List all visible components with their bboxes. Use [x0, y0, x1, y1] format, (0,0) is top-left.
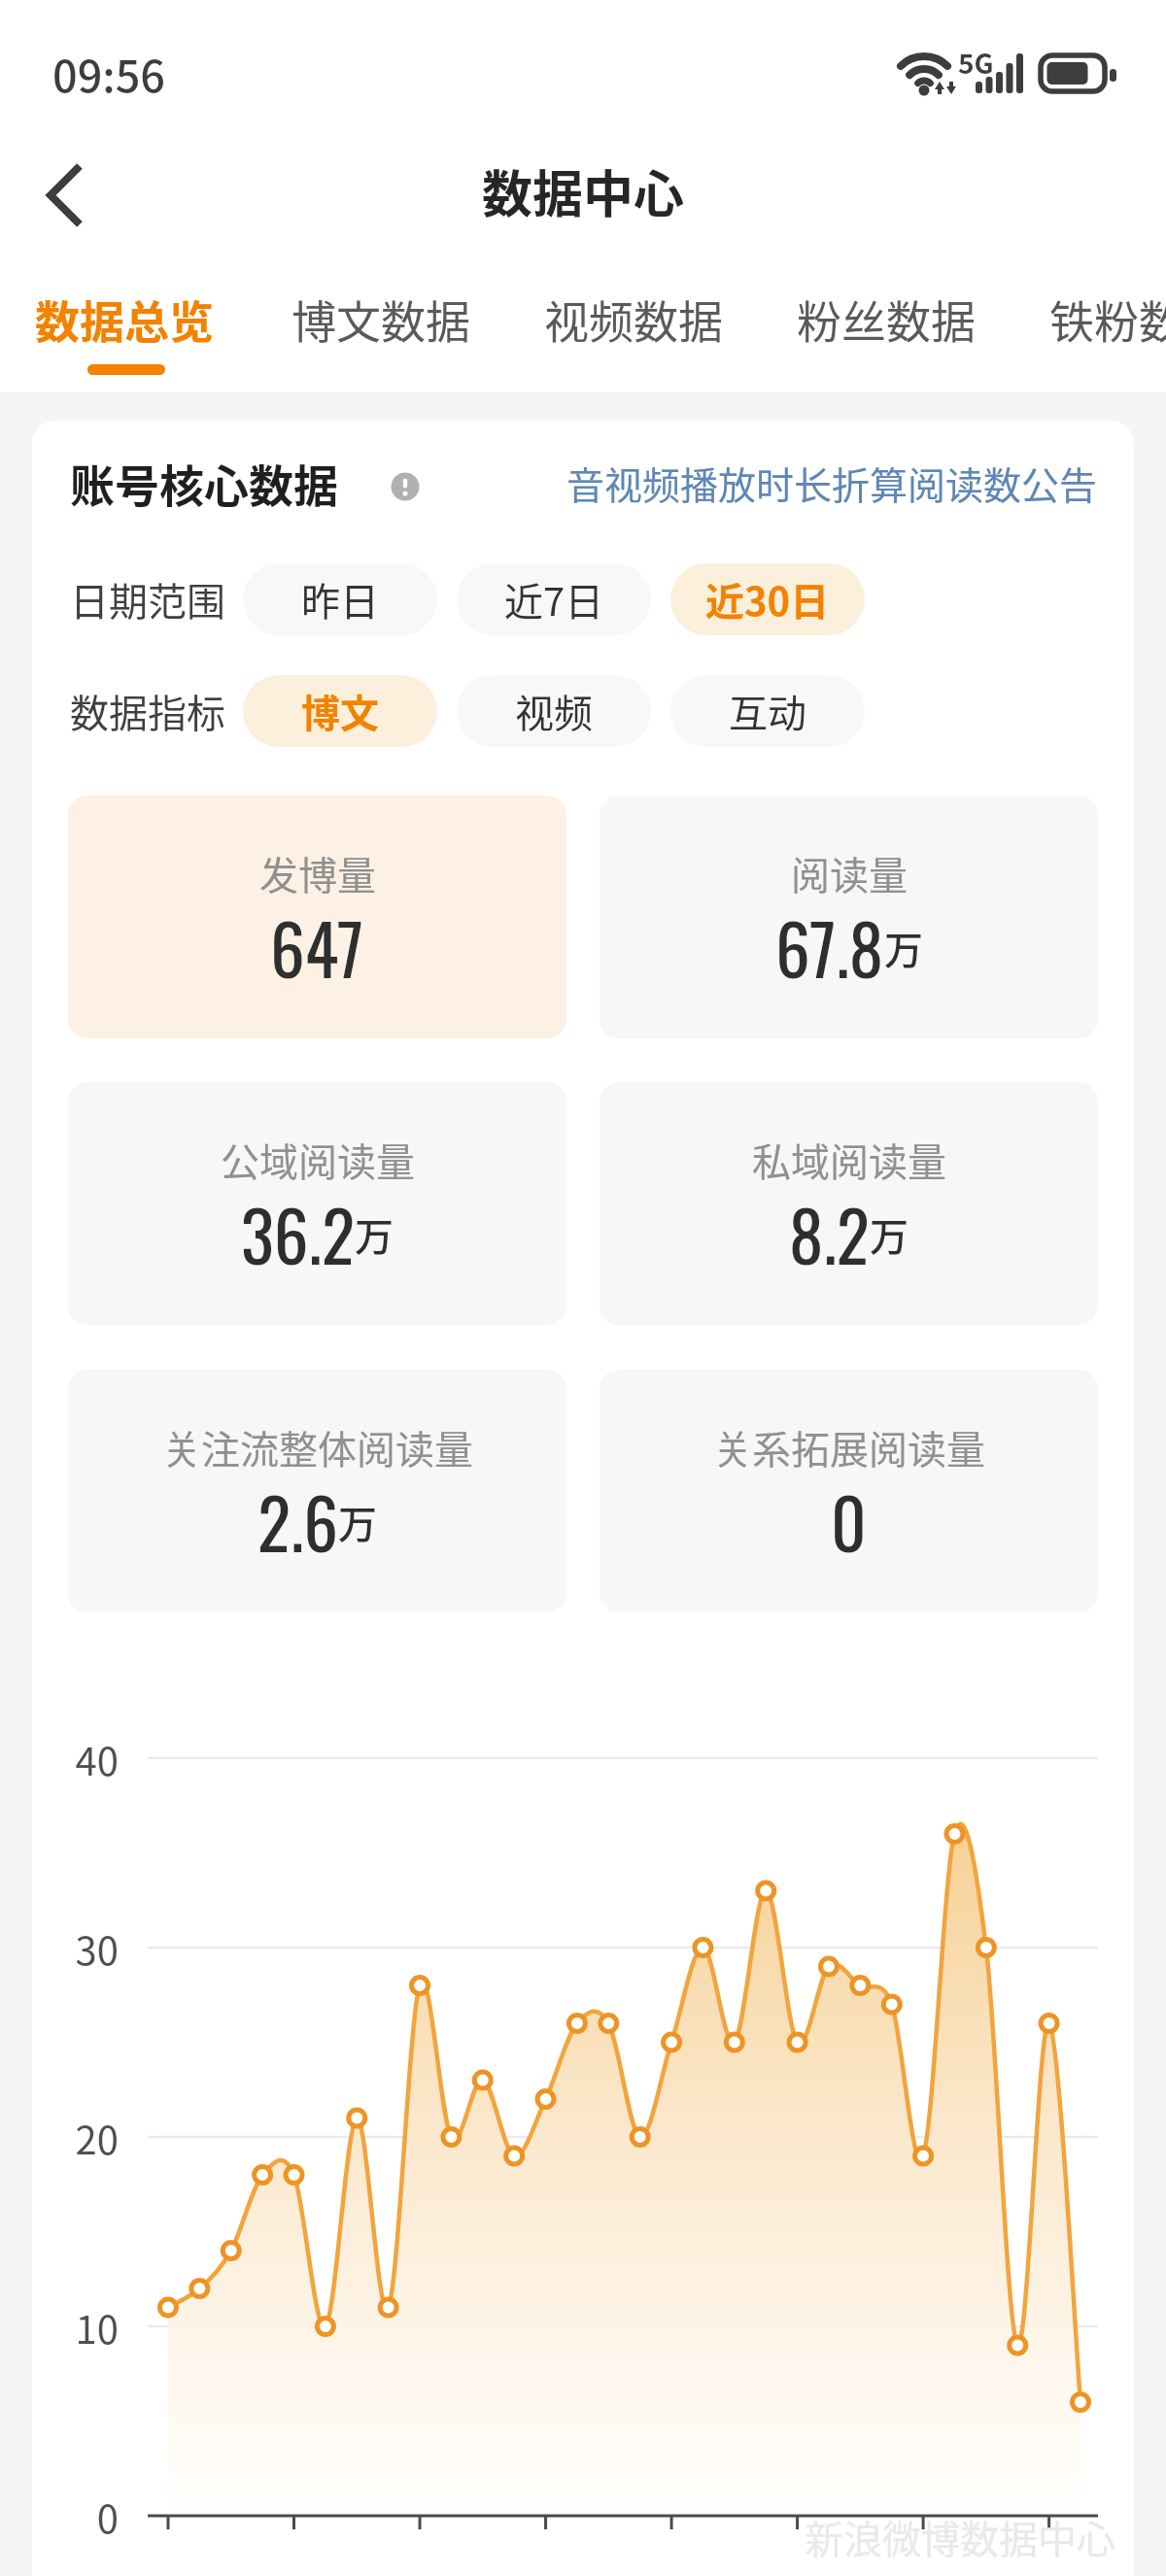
- staticText: 数据指标: [70, 683, 225, 739]
- button[interactable]: 铁粉数据: [1049, 287, 1166, 352]
- button[interactable]: 近30日: [670, 563, 865, 635]
- staticText: 近7日: [504, 571, 604, 627]
- staticText: 0: [96, 2489, 119, 2543]
- staticText: 5G: [958, 43, 994, 83]
- button[interactable]: 公域阅读量: [68, 1082, 566, 1325]
- staticText: 博文: [301, 683, 379, 739]
- staticText: 万: [870, 1206, 909, 1263]
- staticText: 视频: [515, 683, 593, 739]
- button[interactable]: 私域阅读量: [600, 1082, 1098, 1325]
- button[interactable]: 阅读量: [600, 796, 1098, 1038]
- staticText: 账号核心数据: [70, 451, 338, 513]
- button[interactable]: 互动: [670, 675, 865, 747]
- staticText: 日期范围: [70, 571, 225, 627]
- staticText: 09:56: [52, 42, 166, 105]
- staticText: 8.2: [789, 1182, 870, 1273]
- staticText: 万: [338, 1494, 377, 1550]
- staticText: 万: [884, 920, 923, 976]
- staticText: 67.8: [775, 896, 884, 987]
- staticText: 私域阅读量: [752, 1132, 946, 1188]
- button[interactable]: 近7日: [457, 563, 651, 635]
- staticText: 36.2: [241, 1182, 355, 1273]
- staticText: 近30日: [705, 571, 830, 627]
- staticText: 阅读量: [791, 845, 908, 901]
- staticText: 万: [355, 1206, 394, 1263]
- button[interactable]: 视频数据: [544, 287, 723, 352]
- staticText: 互动: [729, 683, 806, 739]
- button[interactable]: 博文数据: [291, 287, 470, 352]
- staticText: 647: [270, 896, 364, 987]
- staticText: 0: [831, 1470, 867, 1561]
- staticText: 数据中心: [482, 154, 685, 227]
- staticText: 公域阅读量: [221, 1132, 415, 1188]
- staticText: 发博量: [259, 845, 376, 901]
- staticText: 2.6: [257, 1470, 338, 1561]
- staticText: 10: [75, 2299, 119, 2354]
- button[interactable]: 博文: [243, 675, 437, 747]
- button[interactable]: [27, 155, 105, 237]
- staticText: 关注流整体阅读量: [162, 1419, 473, 1475]
- button[interactable]: 关注流整体阅读量: [68, 1370, 566, 1612]
- button[interactable]: 视频: [457, 675, 651, 747]
- button[interactable]: 音视频播放时长折算阅读数公告: [486, 455, 1098, 511]
- staticText: 音视频播放时长折算阅读数公告: [566, 456, 1098, 510]
- staticText: 40: [75, 1731, 119, 1785]
- button[interactable]: 粉丝数据: [797, 287, 976, 352]
- button[interactable]: 昨日: [243, 563, 437, 635]
- button[interactable]: 发博量: [68, 796, 566, 1038]
- staticText: 昨日: [301, 571, 379, 627]
- staticText: 30: [75, 1920, 119, 1975]
- staticText: 新浪微博数据中心: [805, 2509, 1115, 2565]
- staticText: 关系拓展阅读量: [713, 1419, 985, 1475]
- staticText: 20: [75, 2110, 119, 2164]
- button[interactable]: 数据总览: [35, 287, 214, 352]
- button[interactable]: 关系拓展阅读量: [600, 1370, 1098, 1612]
